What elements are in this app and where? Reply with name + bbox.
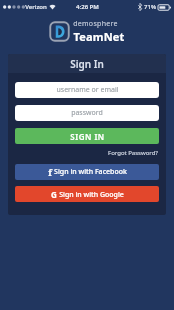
button[interactable]: password bbox=[15, 105, 159, 121]
button[interactable]: f bbox=[15, 164, 159, 180]
button[interactable]: SIGN IN bbox=[15, 128, 159, 144]
staticText: 71% bbox=[144, 3, 156, 11]
staticText: SIGN IN bbox=[70, 131, 105, 142]
staticText: Forgot Password? bbox=[108, 149, 158, 157]
staticText: G bbox=[51, 189, 57, 200]
staticText: Sign in with Facebook bbox=[54, 167, 127, 177]
staticText: Verizon bbox=[25, 3, 47, 11]
staticText: Sign in with Google bbox=[59, 190, 124, 200]
staticText: username or email bbox=[56, 85, 119, 95]
button[interactable]: Forgot Password? bbox=[107, 148, 159, 158]
staticText: password bbox=[71, 108, 103, 118]
button[interactable]: username or email bbox=[15, 82, 159, 98]
staticText: 4:26 PM bbox=[76, 3, 99, 11]
staticText: demosphere bbox=[73, 19, 118, 29]
staticText: Sign In bbox=[70, 57, 104, 71]
staticText: TeamNet bbox=[73, 29, 125, 44]
button[interactable]: G bbox=[15, 186, 159, 202]
staticText: f bbox=[48, 166, 52, 178]
